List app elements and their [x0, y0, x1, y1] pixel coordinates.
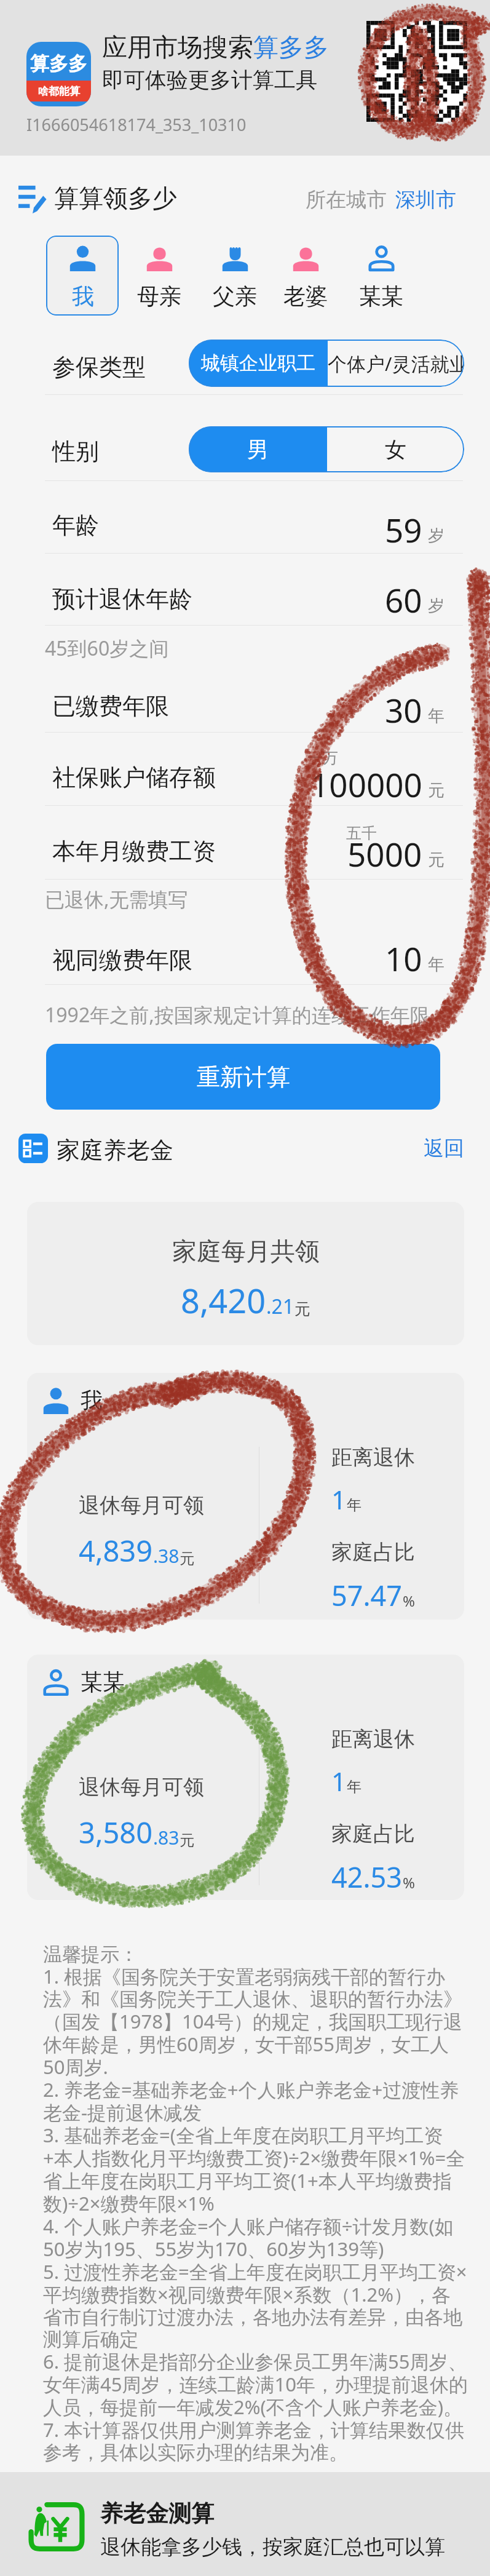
staticText: 男 — [247, 436, 269, 463]
staticText: 女 — [385, 436, 406, 463]
staticText: 元 — [180, 1831, 194, 1850]
staticText: 预计退休年龄 — [52, 584, 192, 614]
staticText: 5000 — [347, 832, 422, 876]
button[interactable]: 返回 — [393, 1134, 464, 1163]
staticText: 距离退休 — [331, 1726, 415, 1752]
button[interactable]: 父亲 — [199, 236, 271, 316]
button[interactable]: 老婆 — [269, 236, 342, 316]
staticText: 42.53 — [331, 1858, 403, 1896]
staticText: .38 — [153, 1543, 180, 1568]
button[interactable]: 我 — [27, 1373, 464, 1620]
staticText: 元 — [294, 1299, 310, 1319]
staticText: 1 — [331, 1482, 347, 1517]
staticText: 8,420 — [181, 1278, 266, 1323]
button[interactable]: 个体户/灵活就业 — [328, 340, 464, 387]
staticText: 城镇企业职工 — [201, 351, 315, 375]
staticText: 个体户/灵活就业 — [328, 351, 464, 376]
staticText: 45到60岁之间 — [45, 635, 169, 662]
staticText: 家庭占比 — [331, 1821, 415, 1847]
staticText: 温馨提示： 1. 根据《国务院关于安置老弱病残干部的暂行办法》和《国务院关于工人… — [43, 1942, 468, 2465]
staticText: 母亲 — [137, 282, 181, 310]
staticText: 岁 — [428, 595, 445, 616]
staticText: 重新计算 — [197, 1062, 290, 1092]
button[interactable]: 城镇企业职工 — [189, 340, 328, 387]
staticText: 年龄 — [52, 511, 99, 540]
staticText: 元 — [180, 1549, 194, 1568]
staticText: 深圳市 — [395, 187, 456, 213]
staticText: 30 — [385, 688, 422, 732]
button[interactable]: 某某 — [27, 1655, 464, 1900]
staticText: 岁 — [428, 525, 445, 546]
staticText: 算算领多少 — [54, 183, 177, 213]
staticText: 社保账户储存额 — [52, 763, 216, 792]
staticText: 养老金测算 — [100, 2499, 214, 2528]
staticText: 已退休,无需填写 — [45, 886, 188, 913]
staticText: 五千 — [346, 824, 377, 843]
staticText: 退休每月可领 — [79, 1774, 204, 1800]
staticText: 即可体验更多计算工具 — [102, 66, 317, 93]
staticText: 参保类型 — [52, 352, 146, 382]
staticText: 家庭养老金 — [57, 1135, 173, 1165]
staticText: 应用市场搜索 — [102, 32, 253, 64]
staticText: 1 — [331, 1763, 347, 1799]
button[interactable]: 所在城市 — [306, 187, 456, 213]
staticText: 算多多 — [253, 32, 329, 64]
staticText: 57.47 — [331, 1576, 403, 1614]
staticText: I1666054618174_353_10310 — [26, 113, 247, 136]
staticText: 元 — [428, 849, 445, 870]
staticText: 退休能拿多少钱，按家庭汇总也可以算 — [100, 2534, 445, 2560]
staticText: 家庭每月共领 — [172, 1236, 320, 1266]
staticText: 100000 — [310, 762, 422, 806]
staticText: 所在城市 — [306, 187, 387, 213]
staticText: 退休每月可领 — [79, 1492, 204, 1519]
staticText: .83 — [153, 1825, 180, 1850]
staticText: 10 — [385, 936, 422, 980]
staticText: % — [403, 1872, 415, 1893]
staticText: .21 — [266, 1293, 294, 1320]
staticText: 视同缴费年限 — [52, 945, 192, 975]
staticText: 老婆 — [283, 282, 328, 310]
staticText: 某某 — [359, 282, 403, 310]
staticText: 算多多 — [30, 52, 87, 76]
button[interactable]: 母亲 — [123, 236, 196, 316]
staticText: 4,839 — [79, 1531, 153, 1570]
button[interactable]: 某某 — [345, 236, 417, 316]
staticText: % — [403, 1591, 415, 1611]
button[interactable]: 我 — [46, 236, 119, 316]
staticText: 年 — [428, 954, 445, 975]
staticText: 距离退休 — [331, 1444, 415, 1471]
staticText: 3,580 — [79, 1813, 153, 1852]
staticText: 我 — [81, 1386, 103, 1414]
button[interactable]: 女 — [327, 426, 464, 472]
staticText: 父亲 — [213, 282, 257, 310]
staticText: 已缴费年限 — [52, 691, 169, 721]
button[interactable]: 男 — [189, 426, 327, 472]
staticText: 年 — [347, 1496, 362, 1514]
staticText: 家庭占比 — [331, 1539, 415, 1565]
staticText: 年 — [428, 706, 445, 726]
staticText: 性别 — [52, 437, 99, 466]
staticText: 一万 — [307, 749, 338, 768]
staticText: 1992年之前,按国家规定计算的连续工作年限 — [45, 1001, 430, 1028]
staticText: 元 — [428, 780, 445, 801]
staticText: 60 — [385, 578, 422, 622]
staticText: 某某 — [81, 1668, 125, 1696]
staticText: 本年月缴费工资 — [52, 837, 216, 866]
staticText: 年 — [347, 1778, 362, 1796]
button[interactable]: 重新计算 — [46, 1044, 440, 1110]
staticText: 返回 — [424, 1135, 464, 1161]
staticText: 啥都能算 — [38, 85, 80, 98]
staticText: 我 — [72, 282, 94, 310]
staticText: 59 — [385, 507, 422, 552]
